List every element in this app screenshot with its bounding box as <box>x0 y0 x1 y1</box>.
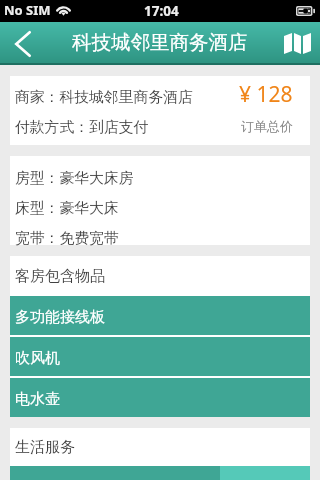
staticText: 床型：豪华大床 <box>15 199 119 218</box>
staticText: 吹风机 <box>15 349 60 368</box>
staticText: 17:04 <box>144 2 179 20</box>
staticText: 宽带：免费宽带 <box>15 229 119 248</box>
staticText: 订单总价 <box>241 118 293 134</box>
staticText: 科技城邻里商务酒店 <box>72 30 248 55</box>
staticText: 付款方式：到店支付 <box>15 118 149 137</box>
staticText: 多功能接线板 <box>15 308 105 327</box>
staticText: No SIM <box>4 1 51 19</box>
button[interactable]: 多功能接线板 <box>10 296 310 335</box>
button[interactable]: 电水壶 <box>10 378 310 417</box>
staticText: 电水壶 <box>15 390 60 409</box>
staticText: 生活服务 <box>15 438 75 457</box>
button[interactable]: Map <box>274 22 320 65</box>
staticText: 商家：科技城邻里商务酒店 <box>15 88 193 107</box>
button[interactable]: Back <box>0 22 46 65</box>
staticText: 房型：豪华大床房 <box>15 169 134 188</box>
button[interactable]: 吹风机 <box>10 337 310 376</box>
staticText: 客房包含物品 <box>15 267 105 286</box>
staticText: ¥ 128 <box>239 80 293 109</box>
